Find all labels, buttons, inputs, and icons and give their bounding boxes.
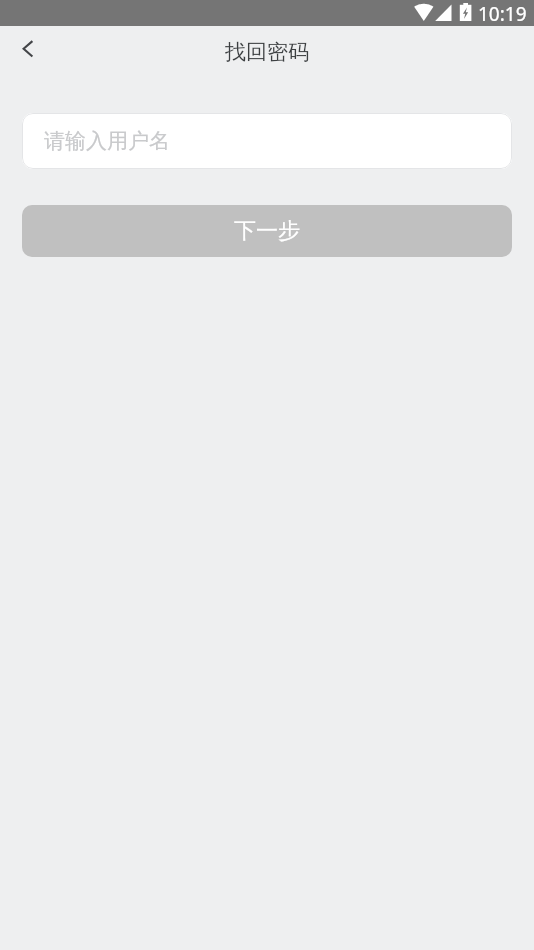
staticText: 找回密码 — [225, 39, 309, 65]
staticText: 下一步 — [234, 217, 300, 245]
button[interactable]: Back — [0, 26, 56, 78]
staticText: 10:19 — [478, 1, 527, 26]
button[interactable]: 请输入用户名 — [22, 113, 512, 169]
staticText: 请输入用户名 — [44, 128, 170, 154]
button[interactable]: 下一步 — [22, 205, 512, 257]
